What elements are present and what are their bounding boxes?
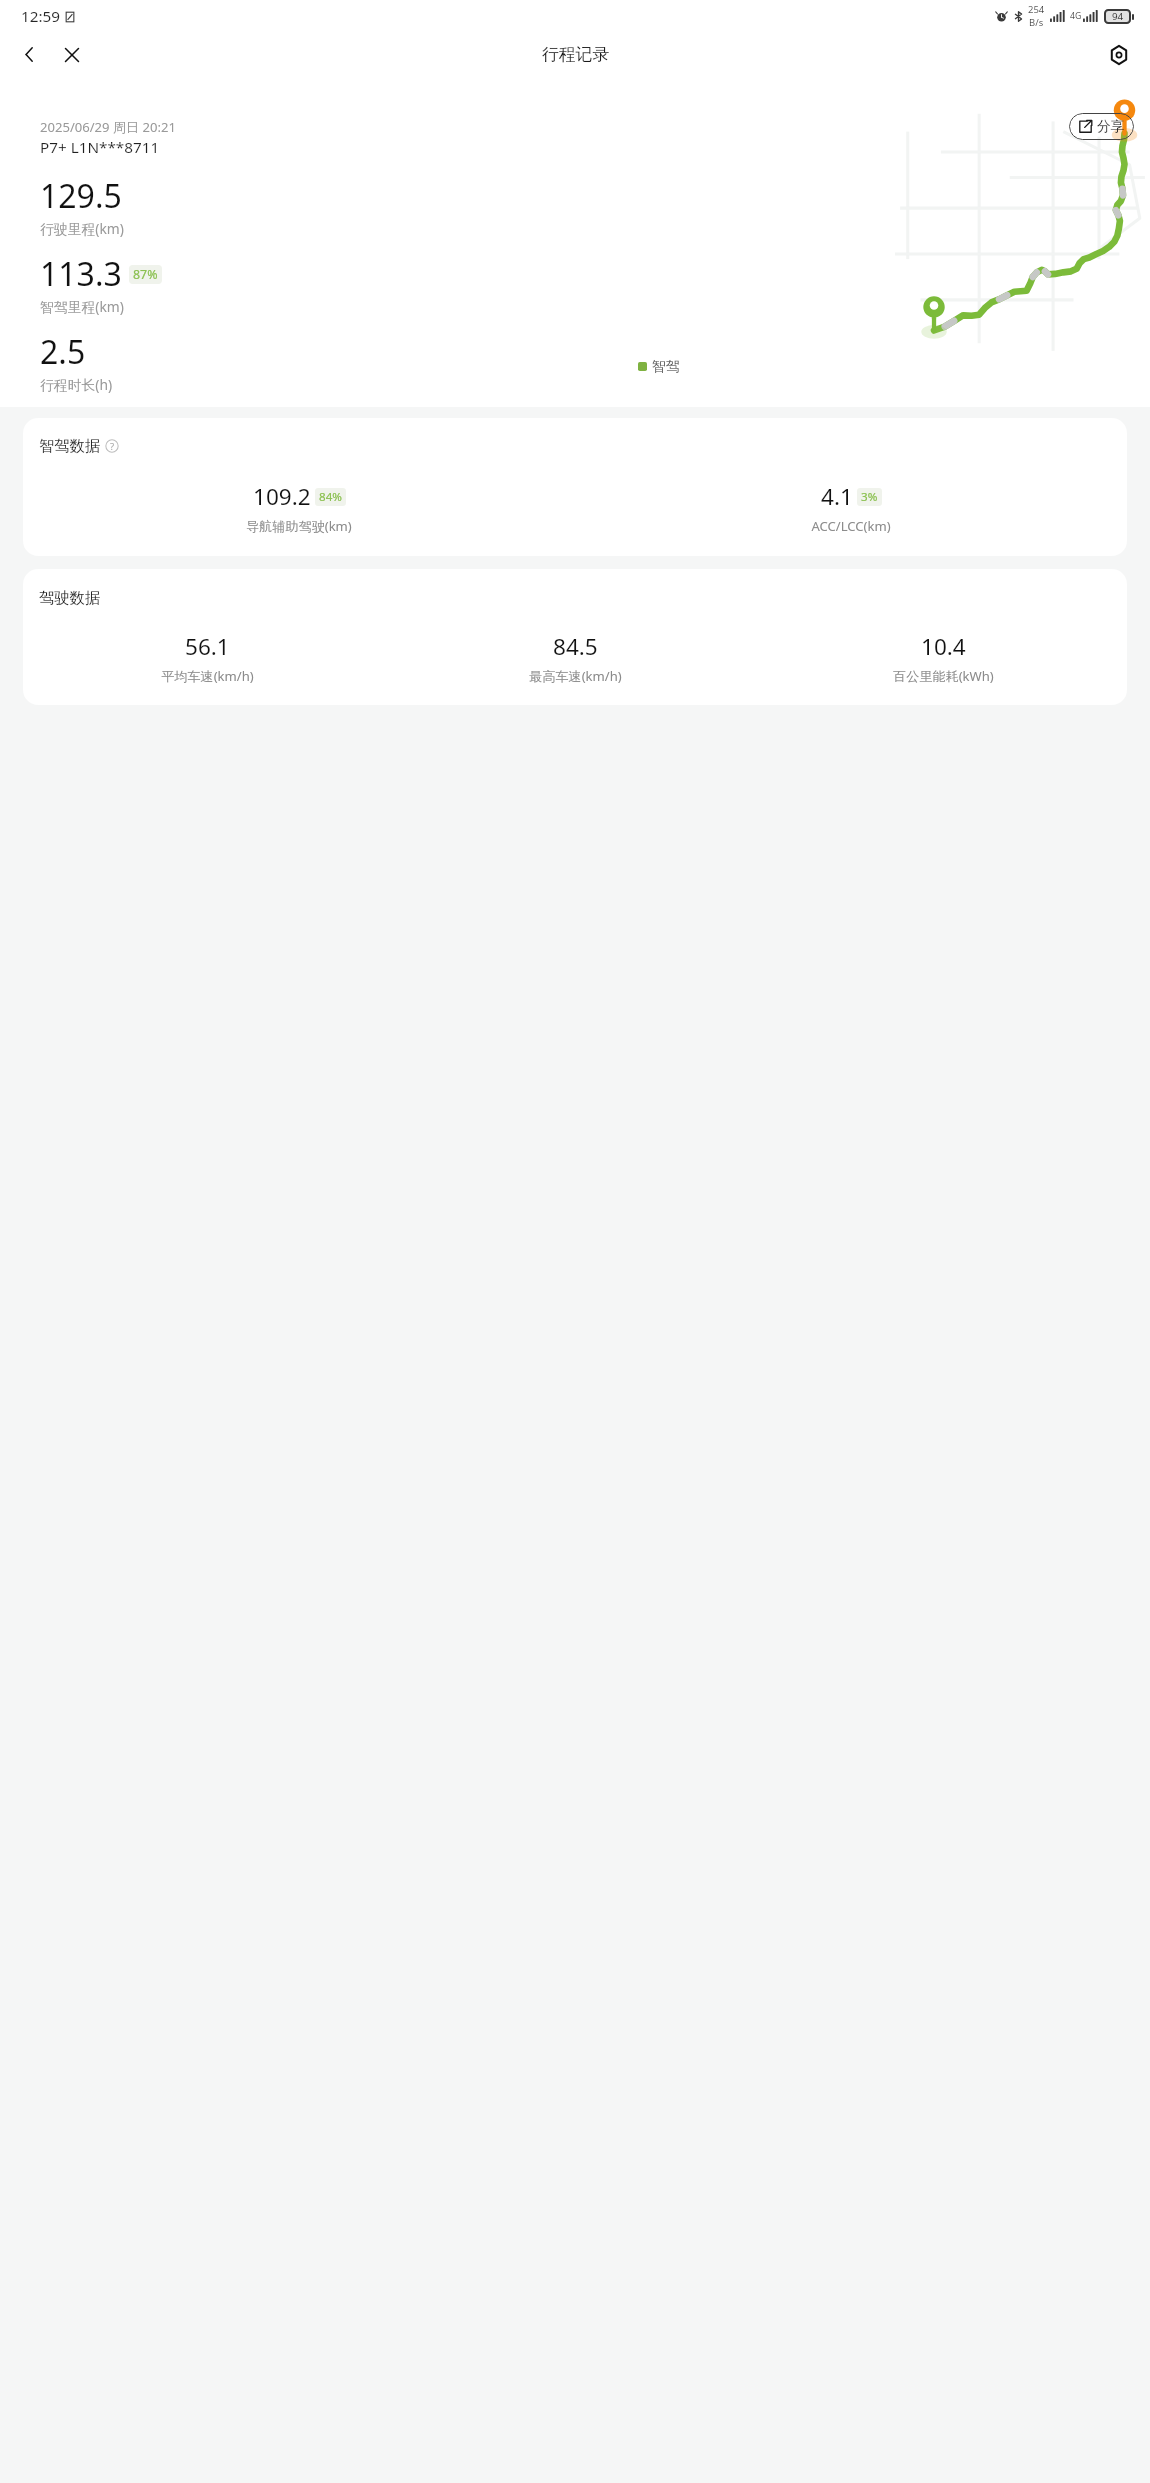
staticText: 254 <box>1028 3 1045 16</box>
staticText: 56.1 <box>185 631 230 662</box>
button[interactable]: Close <box>55 38 88 71</box>
staticText: 行驶里程(km) <box>40 219 124 238</box>
staticText: 12:59 <box>21 6 61 27</box>
button[interactable]: Help <box>105 439 119 453</box>
staticText: 最高车速(km/h) <box>529 667 622 685</box>
staticText: 驾驶数据 <box>39 588 101 607</box>
staticText: P7+ L1N***8711 <box>40 137 160 158</box>
button[interactable]: Settings <box>1103 39 1134 70</box>
staticText: 智驾数据 <box>39 436 101 455</box>
staticText: 94 <box>1112 10 1124 23</box>
staticText: 84.5 <box>553 631 598 662</box>
staticText: 4G <box>1070 10 1082 22</box>
staticText: 10.4 <box>921 631 966 662</box>
staticText: 113.3 <box>40 252 122 296</box>
staticText: 2.5 <box>40 330 86 374</box>
staticText: 分享 <box>1097 118 1125 135</box>
button[interactable]: Back <box>13 38 46 71</box>
staticText: 4.1 <box>821 481 853 512</box>
staticText: 109.2 <box>253 481 311 512</box>
staticText: 百公里能耗(kWh) <box>893 667 994 685</box>
staticText: ? <box>110 440 115 453</box>
staticText: 84% <box>319 489 342 505</box>
staticText: 2025/06/29 周日 20:21 <box>40 118 176 136</box>
staticText: 平均车速(km/h) <box>161 667 254 685</box>
button[interactable]: 智驾数据 <box>23 418 1127 556</box>
staticText: 导航辅助驾驶(km) <box>246 517 352 535</box>
staticText: 智驾里程(km) <box>40 297 124 316</box>
staticText: 行程时长(h) <box>40 375 113 394</box>
staticText: 行程记录 <box>542 44 609 65</box>
staticText: ACC/LCC(km) <box>811 517 891 535</box>
button[interactable]: 分享 <box>1069 113 1134 140</box>
staticText: 3% <box>861 489 878 505</box>
staticText: 智驾 <box>652 358 680 375</box>
staticText: 129.5 <box>40 174 122 218</box>
button[interactable]: 驾驶数据 <box>23 569 1127 705</box>
staticText: 87% <box>133 266 158 283</box>
staticText: B/s <box>1029 16 1044 29</box>
